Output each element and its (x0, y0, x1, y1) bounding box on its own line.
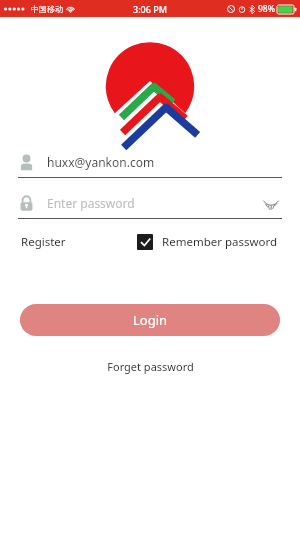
staticText: Forget password (107, 359, 194, 374)
staticText: Login (133, 311, 168, 329)
staticText: Remember password (162, 234, 278, 250)
button[interactable]: Register (20, 232, 67, 252)
staticText: Enter password (47, 195, 135, 211)
button[interactable]: Login (20, 304, 280, 336)
staticText: 98% (258, 3, 275, 15)
button[interactable]: Forget password (99, 356, 202, 377)
staticText: Register (21, 234, 66, 250)
staticText: 中国移动 (31, 4, 63, 14)
button[interactable]: Remember password (137, 234, 278, 250)
button[interactable]: Show password (260, 192, 282, 214)
staticText: huxx@yankon.com (47, 154, 155, 170)
staticText: 3:06 PM (133, 3, 167, 15)
